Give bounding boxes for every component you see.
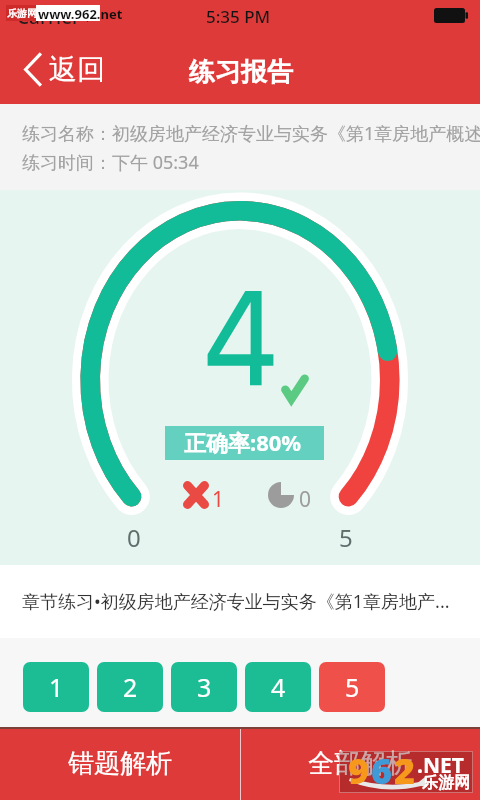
button[interactable]: 错题解析 (0, 727, 240, 800)
staticText: 6 (371, 746, 393, 788)
staticText: 0 (127, 521, 141, 554)
button[interactable]: 4 (245, 662, 311, 712)
staticText: 3 (197, 670, 212, 704)
staticText: 乐游网 (422, 773, 470, 793)
staticText: 章节练习•初级房地产经济专业与实务《第1章房地产... (22, 589, 450, 614)
staticText: 5 (345, 670, 360, 704)
staticText: 全部解析 (308, 747, 412, 780)
staticText: 返回 (49, 52, 105, 87)
staticText: 1 (212, 485, 225, 514)
staticText: 0 (299, 485, 312, 514)
staticText: 9 (348, 746, 370, 788)
staticText: 练习名称：初级房地产经济专业与实务《第1章房地产概述 (22, 121, 480, 146)
button[interactable]: 2 (97, 662, 163, 712)
staticText: Carrier (17, 4, 81, 30)
staticText: 5:35 PM (206, 5, 271, 28)
staticText: 练习报告 (189, 56, 293, 89)
staticText: 4 (271, 670, 286, 704)
staticText: 练习时间：下午 05:34 (22, 150, 199, 175)
staticText: www.962.net (38, 5, 123, 21)
button[interactable]: 全部解析 (240, 727, 480, 800)
staticText: 乐游网 (7, 7, 37, 20)
button[interactable]: 正确率:80% (165, 426, 324, 460)
button[interactable]: 返回 (16, 48, 113, 91)
staticText: 正确率:80% (184, 427, 302, 457)
staticText: 错题解析 (68, 747, 172, 780)
button[interactable]: 5 (319, 662, 385, 712)
button[interactable]: 3 (171, 662, 237, 712)
button[interactable]: 1 (23, 662, 89, 712)
staticText: 1 (49, 670, 64, 704)
staticText: 2 (394, 746, 416, 788)
staticText: 2 (123, 670, 138, 704)
staticText: .NET (417, 751, 464, 780)
staticText: 5 (339, 521, 353, 554)
